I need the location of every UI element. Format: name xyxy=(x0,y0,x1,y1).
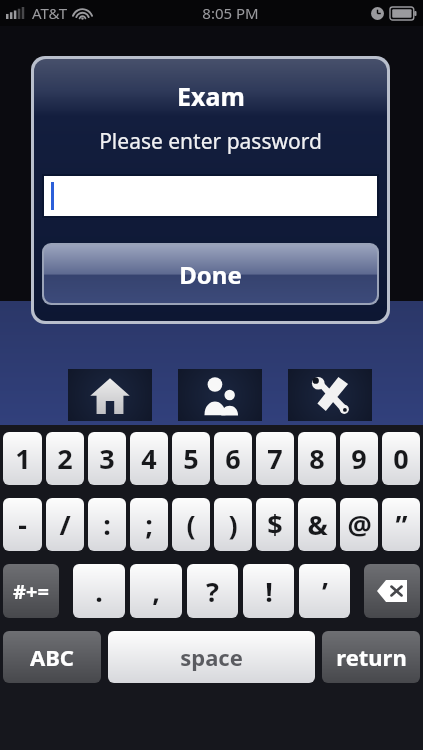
staticText: #+= xyxy=(13,578,49,605)
button[interactable]: 5 xyxy=(172,432,210,485)
staticText: $ xyxy=(267,506,283,543)
staticText: 6 xyxy=(225,440,241,477)
button[interactable]: ; xyxy=(130,498,168,551)
button[interactable]: #+= xyxy=(3,564,59,618)
button[interactable]: return xyxy=(322,631,420,683)
button[interactable]: Tools xyxy=(288,369,372,421)
button[interactable]: $ xyxy=(256,498,294,551)
button[interactable]: 6 xyxy=(214,432,252,485)
button[interactable]: ? xyxy=(187,564,238,618)
button[interactable]: ’ xyxy=(299,564,350,618)
staticText: Done xyxy=(179,258,242,291)
button[interactable]: 3 xyxy=(88,432,126,485)
staticText: . xyxy=(95,573,103,610)
button[interactable]: 4 xyxy=(130,432,168,485)
staticText: 8 xyxy=(309,440,325,477)
staticText: ) xyxy=(228,506,238,543)
button[interactable]: : xyxy=(88,498,126,551)
button[interactable]: . xyxy=(73,564,125,618)
button[interactable]: Contacts xyxy=(178,369,262,421)
button[interactable]: ! xyxy=(243,564,294,618)
button[interactable]: 8 xyxy=(298,432,336,485)
staticText: 7 xyxy=(267,440,283,477)
staticText: ; xyxy=(145,506,153,543)
staticText: - xyxy=(18,506,27,543)
button[interactable]: Done xyxy=(44,245,377,303)
button[interactable] xyxy=(44,176,377,216)
staticText: 5 xyxy=(183,440,199,477)
staticText: ” xyxy=(395,506,408,543)
staticText: ( xyxy=(186,506,196,543)
staticText: Please enter password xyxy=(99,127,322,156)
button[interactable]: 1 xyxy=(3,432,42,485)
staticText: 9 xyxy=(351,440,367,477)
button[interactable]: ABC xyxy=(3,631,101,683)
staticText: 4 xyxy=(141,440,157,477)
staticText: 2 xyxy=(57,440,73,477)
staticText: 1 xyxy=(15,440,31,477)
button[interactable]: - xyxy=(3,498,42,551)
staticText: : xyxy=(103,506,111,543)
staticText: 8:05 PM xyxy=(202,3,259,23)
button[interactable]: space xyxy=(108,631,315,683)
staticText: , xyxy=(152,573,160,610)
button[interactable]: Delete xyxy=(364,564,420,618)
button[interactable]: 2 xyxy=(46,432,84,485)
button[interactable]: 7 xyxy=(256,432,294,485)
staticText: 3 xyxy=(99,440,115,477)
button[interactable]: 9 xyxy=(340,432,378,485)
button[interactable]: / xyxy=(46,498,84,551)
staticText: return xyxy=(336,642,407,672)
button[interactable]: ) xyxy=(214,498,252,551)
button[interactable]: ” xyxy=(382,498,420,551)
button[interactable]: 0 xyxy=(382,432,420,485)
staticText: ! xyxy=(265,573,273,610)
staticText: ? xyxy=(206,573,219,610)
button[interactable]: & xyxy=(298,498,336,551)
staticText: ABC xyxy=(30,642,74,672)
button[interactable]: @ xyxy=(340,498,378,551)
button[interactable]: ( xyxy=(172,498,210,551)
button[interactable]: , xyxy=(130,564,182,618)
staticText: @ xyxy=(347,506,372,543)
staticText: space xyxy=(180,642,243,672)
staticText: 0 xyxy=(393,440,409,477)
staticText: AT&T xyxy=(32,3,67,23)
staticText: ’ xyxy=(322,573,328,610)
staticText: / xyxy=(59,506,71,543)
staticText: Exam xyxy=(177,79,245,113)
staticText: & xyxy=(307,506,328,543)
button[interactable]: Home xyxy=(68,369,152,421)
